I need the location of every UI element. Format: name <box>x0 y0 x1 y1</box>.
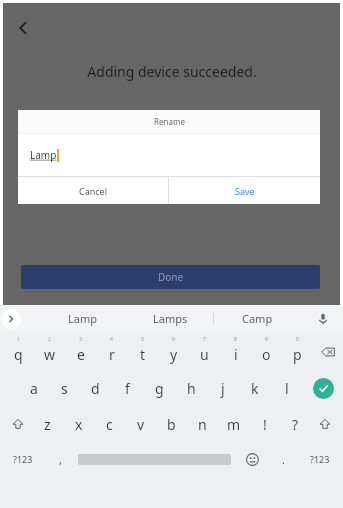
button[interactable]: f <box>111 370 143 406</box>
button[interactable]: k <box>239 370 271 406</box>
staticText: 6 <box>172 336 175 343</box>
button[interactable]: j <box>207 370 239 406</box>
button[interactable]: 0 <box>282 334 313 370</box>
staticText: p <box>293 345 302 364</box>
staticText: i <box>234 345 238 364</box>
staticText: Done <box>158 270 184 284</box>
staticText: q <box>14 345 23 364</box>
staticText: w <box>44 345 56 364</box>
staticText: 8 <box>234 336 237 343</box>
staticText: Save <box>235 185 255 197</box>
button[interactable]: ! <box>249 406 280 442</box>
staticText: 5 <box>141 336 144 343</box>
staticText: s <box>61 379 68 398</box>
staticText: c <box>106 415 113 434</box>
button[interactable]: Back <box>8 13 38 43</box>
staticText: t <box>140 345 146 364</box>
staticText: h <box>187 379 196 398</box>
button[interactable]: Enter <box>303 370 343 406</box>
button[interactable]: 6 <box>158 334 189 370</box>
button[interactable]: ?123 <box>297 442 343 476</box>
button[interactable]: 7 <box>189 334 220 370</box>
button[interactable]: 3 <box>65 334 96 370</box>
button[interactable]: 5 <box>127 334 158 370</box>
button[interactable]: Lamps <box>135 305 205 332</box>
button[interactable]: ? <box>280 406 311 442</box>
button[interactable]: m <box>218 406 249 442</box>
button[interactable]: Cancel <box>18 177 168 204</box>
staticText: v <box>137 415 145 434</box>
button[interactable]: n <box>187 406 218 442</box>
staticText: f <box>125 379 130 398</box>
staticText: u <box>200 345 209 364</box>
staticText: k <box>251 379 259 398</box>
staticText: Camp <box>242 311 273 326</box>
staticText: o <box>262 345 271 364</box>
staticText: e <box>77 345 85 364</box>
button[interactable]: g <box>143 370 175 406</box>
button[interactable]: c <box>94 406 125 442</box>
staticText: 1 <box>17 336 20 343</box>
staticText: 9 <box>265 336 268 343</box>
button[interactable]: z <box>32 406 63 442</box>
staticText: 3 <box>79 336 82 343</box>
button[interactable]: Emoji <box>235 442 269 476</box>
button[interactable]: 1 <box>2 334 34 370</box>
staticText: Rename <box>154 116 185 127</box>
button[interactable]: Expand toolbar <box>1 309 21 329</box>
button[interactable]: b <box>156 406 187 442</box>
button[interactable]: Space <box>74 442 235 476</box>
staticText: g <box>155 379 164 398</box>
button[interactable]: v <box>125 406 156 442</box>
button[interactable]: h <box>175 370 207 406</box>
staticText: Cancel <box>79 185 108 197</box>
button[interactable]: Shift <box>4 406 32 442</box>
staticText: m <box>227 415 241 434</box>
staticText: ?123 <box>13 453 33 465</box>
staticText: d <box>91 379 100 398</box>
button[interactable]: d <box>80 370 111 406</box>
staticText: z <box>44 415 51 434</box>
staticText: j <box>221 379 225 398</box>
button[interactable]: s <box>49 370 80 406</box>
button[interactable]: Shift <box>311 406 339 442</box>
staticText: n <box>198 415 207 434</box>
button[interactable]: Save <box>169 177 320 204</box>
button[interactable]: . <box>269 442 297 476</box>
staticText: . <box>282 452 285 467</box>
staticText: 2 <box>48 336 51 343</box>
button[interactable]: Lamp <box>47 305 117 332</box>
staticText: ?123 <box>310 453 330 465</box>
staticText: Lamps <box>153 311 188 326</box>
button[interactable]: x <box>63 406 94 442</box>
button[interactable]: 2 <box>34 334 65 370</box>
staticText: 4 <box>110 336 113 343</box>
staticText: Lamp <box>68 311 97 326</box>
staticText: , <box>59 452 62 467</box>
button[interactable]: ?123 <box>0 442 46 476</box>
button[interactable]: 9 <box>251 334 282 370</box>
staticText: b <box>167 415 176 434</box>
button[interactable]: 4 <box>96 334 127 370</box>
staticText: l <box>285 379 289 398</box>
button[interactable]: a <box>18 370 49 406</box>
staticText: 0 <box>296 336 299 343</box>
button[interactable]: Done <box>21 265 320 289</box>
staticText: Adding device succeeded. <box>87 62 257 81</box>
staticText: 7 <box>203 336 206 343</box>
staticText: y <box>170 345 178 364</box>
button[interactable]: Camp <box>222 305 292 332</box>
button[interactable]: Backspace <box>313 334 343 370</box>
button[interactable]: l <box>271 370 303 406</box>
button[interactable]: , <box>46 442 74 476</box>
staticText: a <box>30 379 38 398</box>
staticText: ! <box>263 415 267 434</box>
button[interactable]: 8 <box>220 334 251 370</box>
staticText: x <box>75 415 83 434</box>
staticText: r <box>109 345 115 364</box>
staticText: ? <box>292 415 299 434</box>
staticText: Lamp <box>30 148 57 162</box>
button[interactable]: Voice input <box>312 308 334 330</box>
